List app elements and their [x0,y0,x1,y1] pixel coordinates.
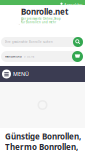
staticText: für Bonrollen und mehr [21,20,56,24]
button[interactable]: Ihre gewünschte Bonrolle suchen [0,36,85,51]
button[interactable]: Anmelden [60,0,85,9]
staticText: Günstige Bonrollen, [5,131,81,142]
button[interactable]: MENÜ [0,66,85,82]
staticText: 0 Items [24,55,34,58]
button[interactable]: Bonrolle.net [0,9,85,36]
staticText: Anmelden [64,2,82,7]
staticText: Bonrolle.net [21,6,68,17]
staticText: WARENKORB [5,55,22,58]
staticText: Thermo Bonrollen, [5,142,78,152]
staticText: Der preiswerte Online-Shop [21,17,61,20]
staticText: Ihre gewünschte Bonrolle suchen [5,40,53,44]
staticText: MENÜ [13,70,29,78]
button[interactable]: WARENKORB [0,51,85,66]
